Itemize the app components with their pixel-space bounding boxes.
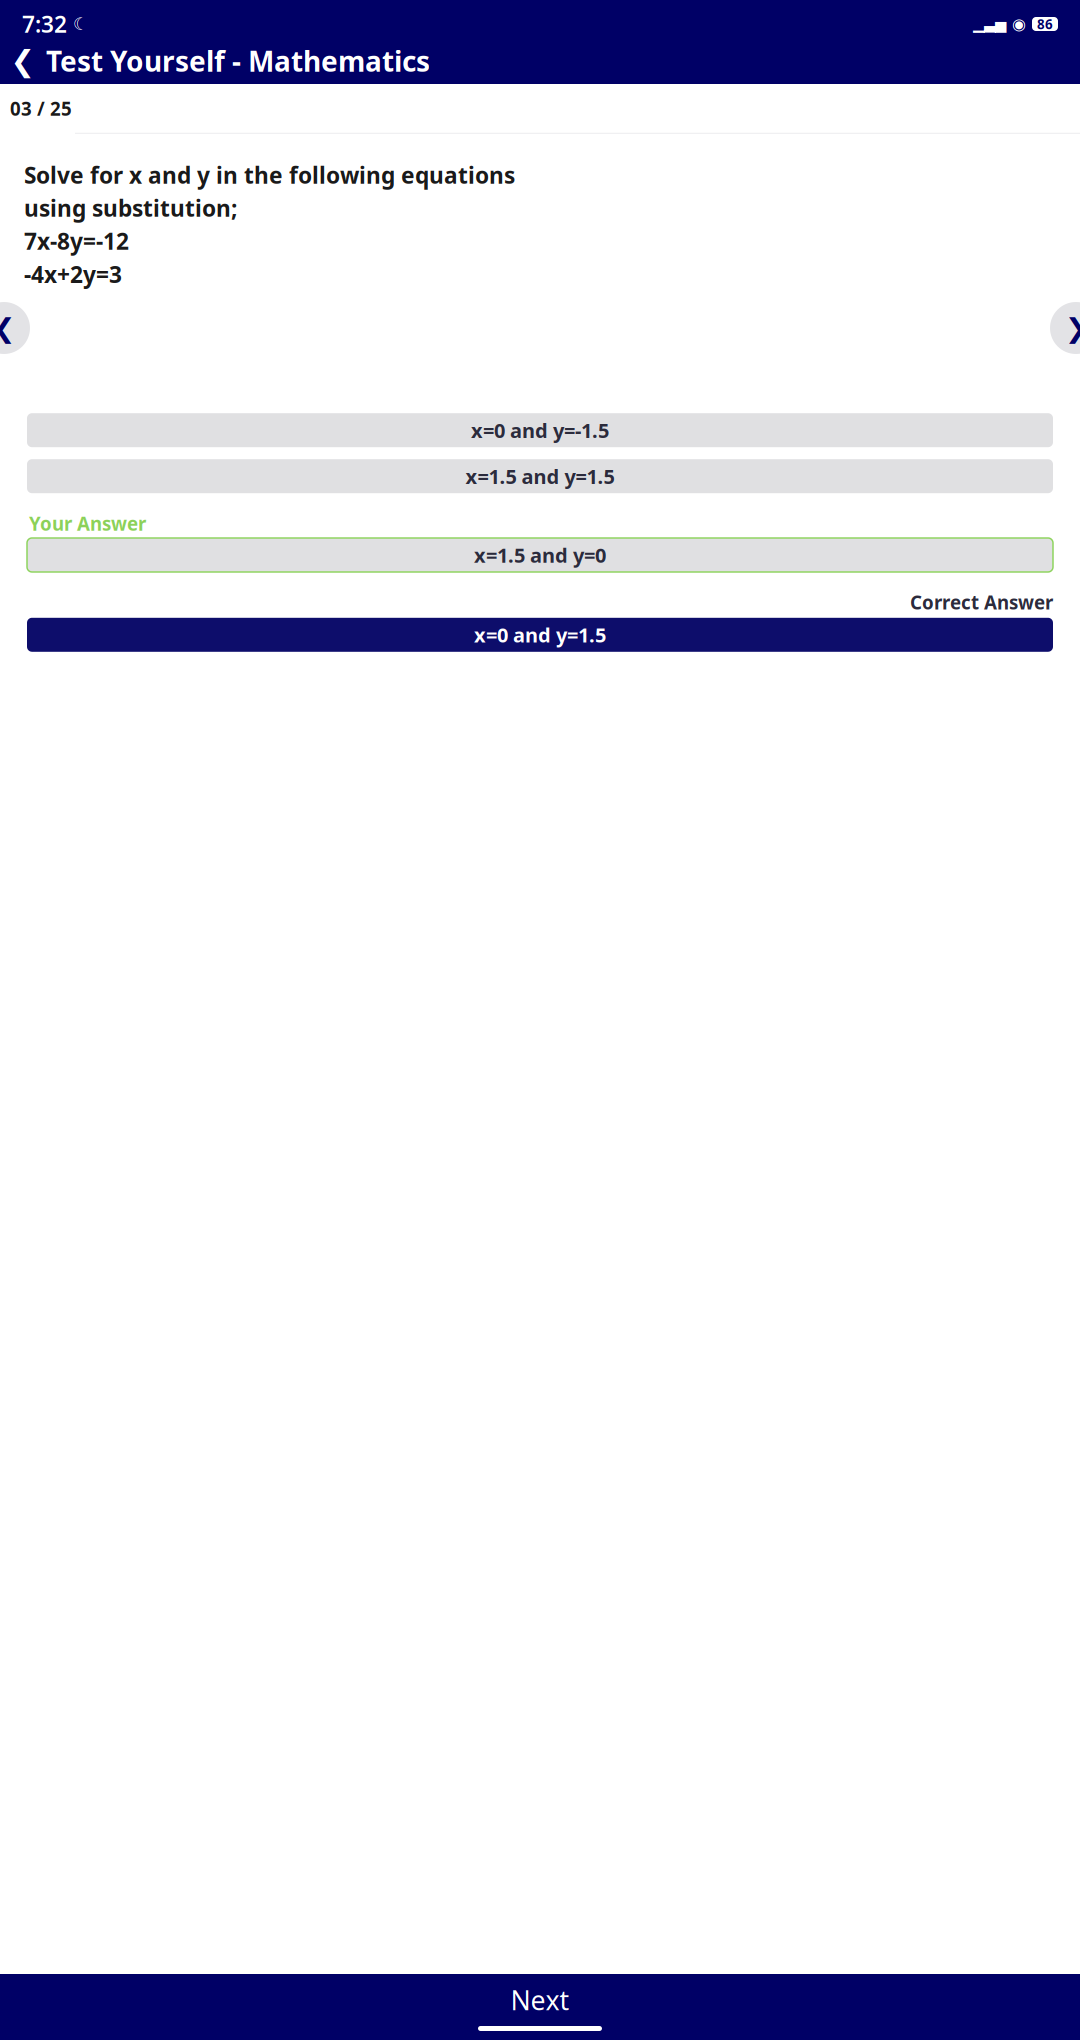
staticText: using substitution;: [24, 193, 237, 223]
button[interactable]: x=0 and y=1.5: [27, 618, 1053, 652]
button[interactable]: Next question: [1050, 302, 1080, 354]
staticText: 7:32: [22, 9, 67, 39]
staticText: 7x-8y=-12: [24, 226, 129, 256]
staticText: Next: [510, 1982, 569, 2018]
staticText: ▁▃▅: [973, 16, 1006, 32]
staticText: Your Answer: [29, 511, 146, 536]
staticText: x=0 and y=1.5: [474, 621, 606, 648]
staticText: 03 / 25: [10, 96, 72, 121]
staticText: Test Yourself - Mathematics: [46, 42, 430, 80]
button[interactable]: Previous question: [0, 302, 30, 354]
staticText: x=1.5 and y=0: [474, 542, 606, 568]
staticText: x=1.5 and y=1.5: [465, 463, 614, 489]
staticText: x=0 and y=-1.5: [471, 417, 609, 443]
button[interactable]: x=0 and y=-1.5: [27, 413, 1053, 447]
button[interactable]: x=1.5 and y=0: [27, 538, 1053, 572]
staticText: 86: [1037, 15, 1053, 33]
staticText: ❯: [1065, 313, 1080, 343]
button[interactable]: Back: [0, 39, 46, 83]
staticText: ❮: [0, 313, 15, 343]
staticText: ◉: [1012, 15, 1026, 33]
staticText: ☾: [67, 14, 89, 34]
staticText: Solve for x and y in the following equat…: [24, 160, 515, 190]
button[interactable]: Next: [0, 1974, 1080, 2040]
staticText: ❮: [10, 44, 35, 78]
staticText: Correct Answer: [910, 590, 1053, 615]
staticText: -4x+2y=3: [24, 259, 122, 289]
button[interactable]: x=1.5 and y=1.5: [27, 459, 1053, 493]
